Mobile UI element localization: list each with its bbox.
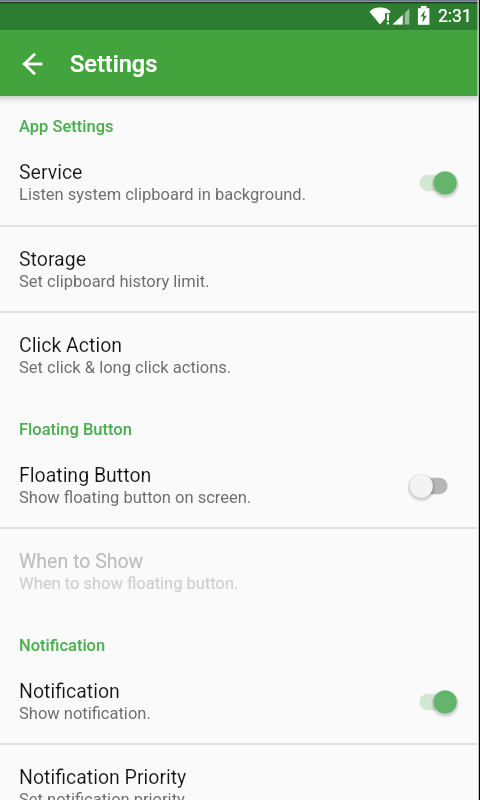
button[interactable]: Switch off [410,458,480,514]
button[interactable]: Notification Priority [0,745,480,800]
button[interactable]: Floating Button [0,443,480,528]
button[interactable]: Switch on [410,674,480,730]
staticText: Floating Button [19,464,152,487]
button[interactable]: Notification [0,659,480,744]
staticText: Set click & long click actions. [19,358,232,377]
button[interactable]: Storage [0,227,480,312]
staticText: Settings [70,50,158,78]
button[interactable]: Service [0,140,480,225]
staticText: When to Show [19,550,144,573]
staticText: Show notification. [19,704,151,723]
staticText: Notification Priority [19,766,187,789]
staticText: Service [19,161,83,184]
staticText: 2:31 [438,6,472,27]
staticText: App Settings [19,117,114,136]
staticText: Notification [19,680,120,703]
staticText: Notification [19,636,106,655]
staticText: Show floating button on screen. [19,488,252,507]
staticText: Click Action [19,334,123,357]
button[interactable]: Back [10,41,56,87]
staticText: When to show floating button. [19,574,239,593]
staticText: Set notification priority. [19,790,189,800]
staticText: Listen system clipboard in background. [19,185,306,204]
button[interactable]: Switch on [410,155,480,211]
staticText: Floating Button [19,420,132,439]
button[interactable]: Click Action [0,313,480,398]
staticText: Set clipboard history limit. [19,272,210,291]
staticText: Storage [19,248,87,271]
button[interactable]: When to Show [0,529,480,614]
